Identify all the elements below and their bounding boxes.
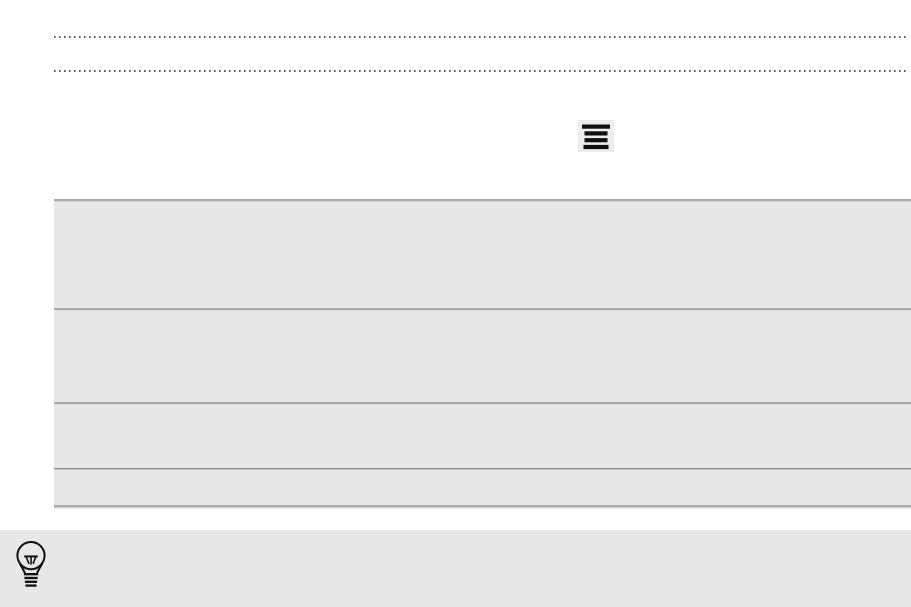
button[interactable]: Tip (14, 543, 48, 585)
button[interactable]: Align center (578, 120, 614, 152)
button[interactable] (54, 402, 911, 468)
button[interactable] (54, 468, 911, 505)
button[interactable] (54, 308, 911, 402)
